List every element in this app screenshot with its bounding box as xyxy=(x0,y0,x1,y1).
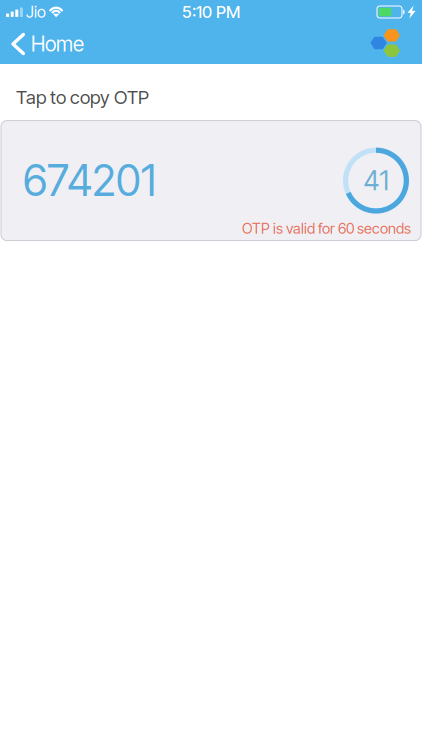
button[interactable]: 674201 xyxy=(0,109,422,241)
staticText: Home xyxy=(31,31,84,56)
staticText: 674201 xyxy=(23,155,156,206)
button[interactable]: Home xyxy=(0,24,94,64)
staticText: OTP is valid for 60 seconds xyxy=(242,220,411,237)
staticText: 41 xyxy=(363,164,388,197)
button[interactable]: App logo xyxy=(362,26,422,62)
staticText: Tap to copy OTP xyxy=(16,86,149,109)
staticText: 5:10 PM xyxy=(182,2,240,22)
staticText: Jio xyxy=(26,2,46,22)
